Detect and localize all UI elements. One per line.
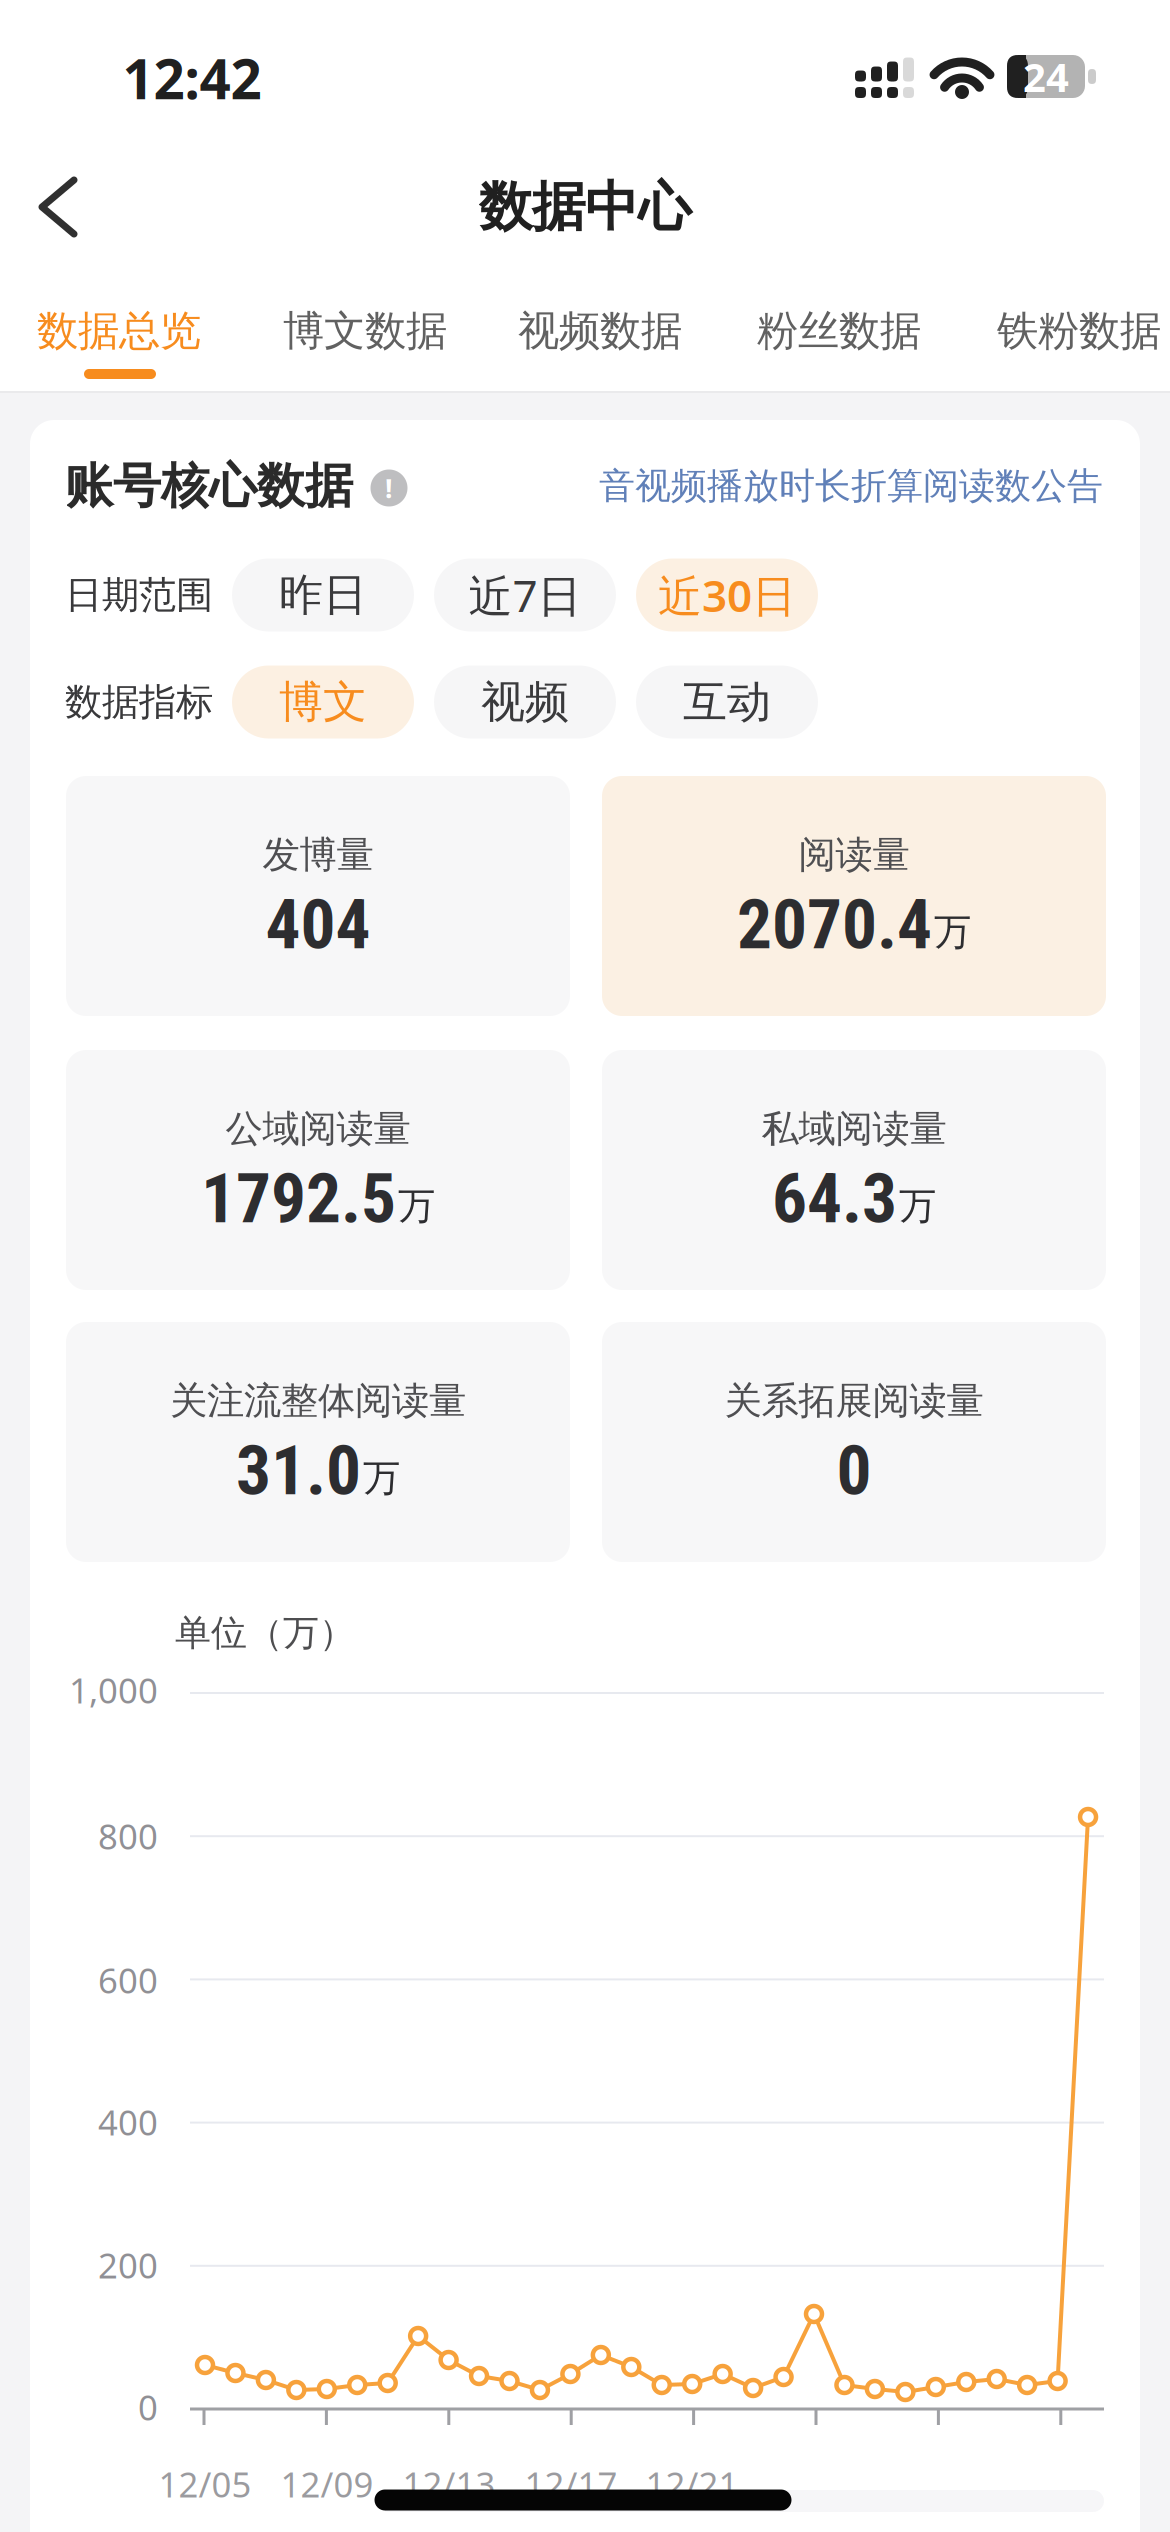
staticText: 200 <box>98 2242 158 2288</box>
staticText: 0 <box>138 2384 158 2430</box>
staticText: 24 <box>1023 50 1069 103</box>
staticText: 阅读量 <box>798 832 909 878</box>
staticText: 12:42 <box>122 42 261 114</box>
staticText: 600 <box>98 1957 158 2003</box>
staticText: 视频数据 <box>518 306 682 356</box>
staticText: 私域阅读量 <box>761 1106 946 1152</box>
button[interactable]: Back <box>38 176 78 238</box>
staticText: 404 <box>265 884 370 965</box>
button[interactable]: 数据总览 <box>37 306 201 356</box>
staticText: 近7日 <box>468 566 581 624</box>
staticText: 400 <box>98 2099 158 2145</box>
staticText: 12/17 <box>524 2461 617 2507</box>
staticText: 64.3 <box>772 1158 897 1239</box>
button[interactable]: 发博量 <box>66 776 570 1016</box>
button[interactable]: 互动 <box>636 665 818 738</box>
button[interactable]: 关系拓展阅读量 <box>602 1322 1106 1562</box>
staticText: 万 <box>899 1183 936 1229</box>
staticText: 800 <box>98 1813 158 1859</box>
staticText: 粉丝数据 <box>757 306 921 356</box>
button[interactable]: 公域阅读量 <box>66 1050 570 1290</box>
staticText: 账号核心数据 <box>65 456 353 515</box>
button[interactable]: 博文数据 <box>283 306 447 356</box>
staticText: 12/05 <box>158 2461 251 2507</box>
button[interactable]: 音视频播放时长折算阅读数公告 <box>599 464 1103 508</box>
staticText: 博文数据 <box>283 306 447 356</box>
staticText: 数据指标 <box>65 679 213 725</box>
staticText: 万 <box>363 1455 400 1501</box>
staticText: 互动 <box>683 675 771 729</box>
staticText: 近30日 <box>658 566 796 624</box>
staticText: 12/09 <box>280 2461 373 2507</box>
staticText: 万 <box>398 1183 435 1229</box>
staticText: 数据中心 <box>479 174 691 240</box>
staticText: 2070.4 <box>737 884 932 965</box>
staticText: 视频 <box>481 675 569 729</box>
button[interactable]: 铁粉数据 <box>997 306 1161 356</box>
staticText: 万 <box>934 909 971 955</box>
staticText: 铁粉数据 <box>997 306 1161 356</box>
staticText: 12/13 <box>402 2461 495 2507</box>
button[interactable]: 粉丝数据 <box>757 306 921 356</box>
staticText: 关系拓展阅读量 <box>724 1378 983 1424</box>
staticText: 31.0 <box>236 1430 361 1511</box>
staticText: 博文 <box>279 675 367 729</box>
button[interactable]: 近7日 <box>434 558 616 631</box>
button[interactable]: 近30日 <box>636 558 818 631</box>
staticText: 音视频播放时长折算阅读数公告 <box>599 464 1103 508</box>
button[interactable]: 阅读量 <box>602 776 1106 1016</box>
staticText: 数据总览 <box>37 306 201 356</box>
button[interactable]: 关注流整体阅读量 <box>66 1322 570 1562</box>
button[interactable]: 博文 <box>232 665 414 738</box>
button[interactable]: 昨日 <box>232 558 414 631</box>
staticText: 1792.5 <box>201 1158 396 1239</box>
button[interactable]: 视频 <box>434 665 616 738</box>
button[interactable]: 视频数据 <box>518 306 682 356</box>
button[interactable]: Info <box>370 469 407 506</box>
staticText: 0 <box>836 1430 871 1511</box>
button[interactable]: 私域阅读量 <box>602 1050 1106 1290</box>
staticText: 发博量 <box>262 832 373 878</box>
staticText: 昨日 <box>279 568 367 622</box>
staticText: 公域阅读量 <box>225 1106 410 1152</box>
staticText: 1,000 <box>69 1667 158 1713</box>
staticText: 日期范围 <box>65 572 213 618</box>
staticText: 关注流整体阅读量 <box>170 1378 466 1424</box>
staticText: ! <box>385 470 393 506</box>
staticText: 单位（万） <box>175 1611 355 1655</box>
staticText: 12/21 <box>645 2461 738 2507</box>
